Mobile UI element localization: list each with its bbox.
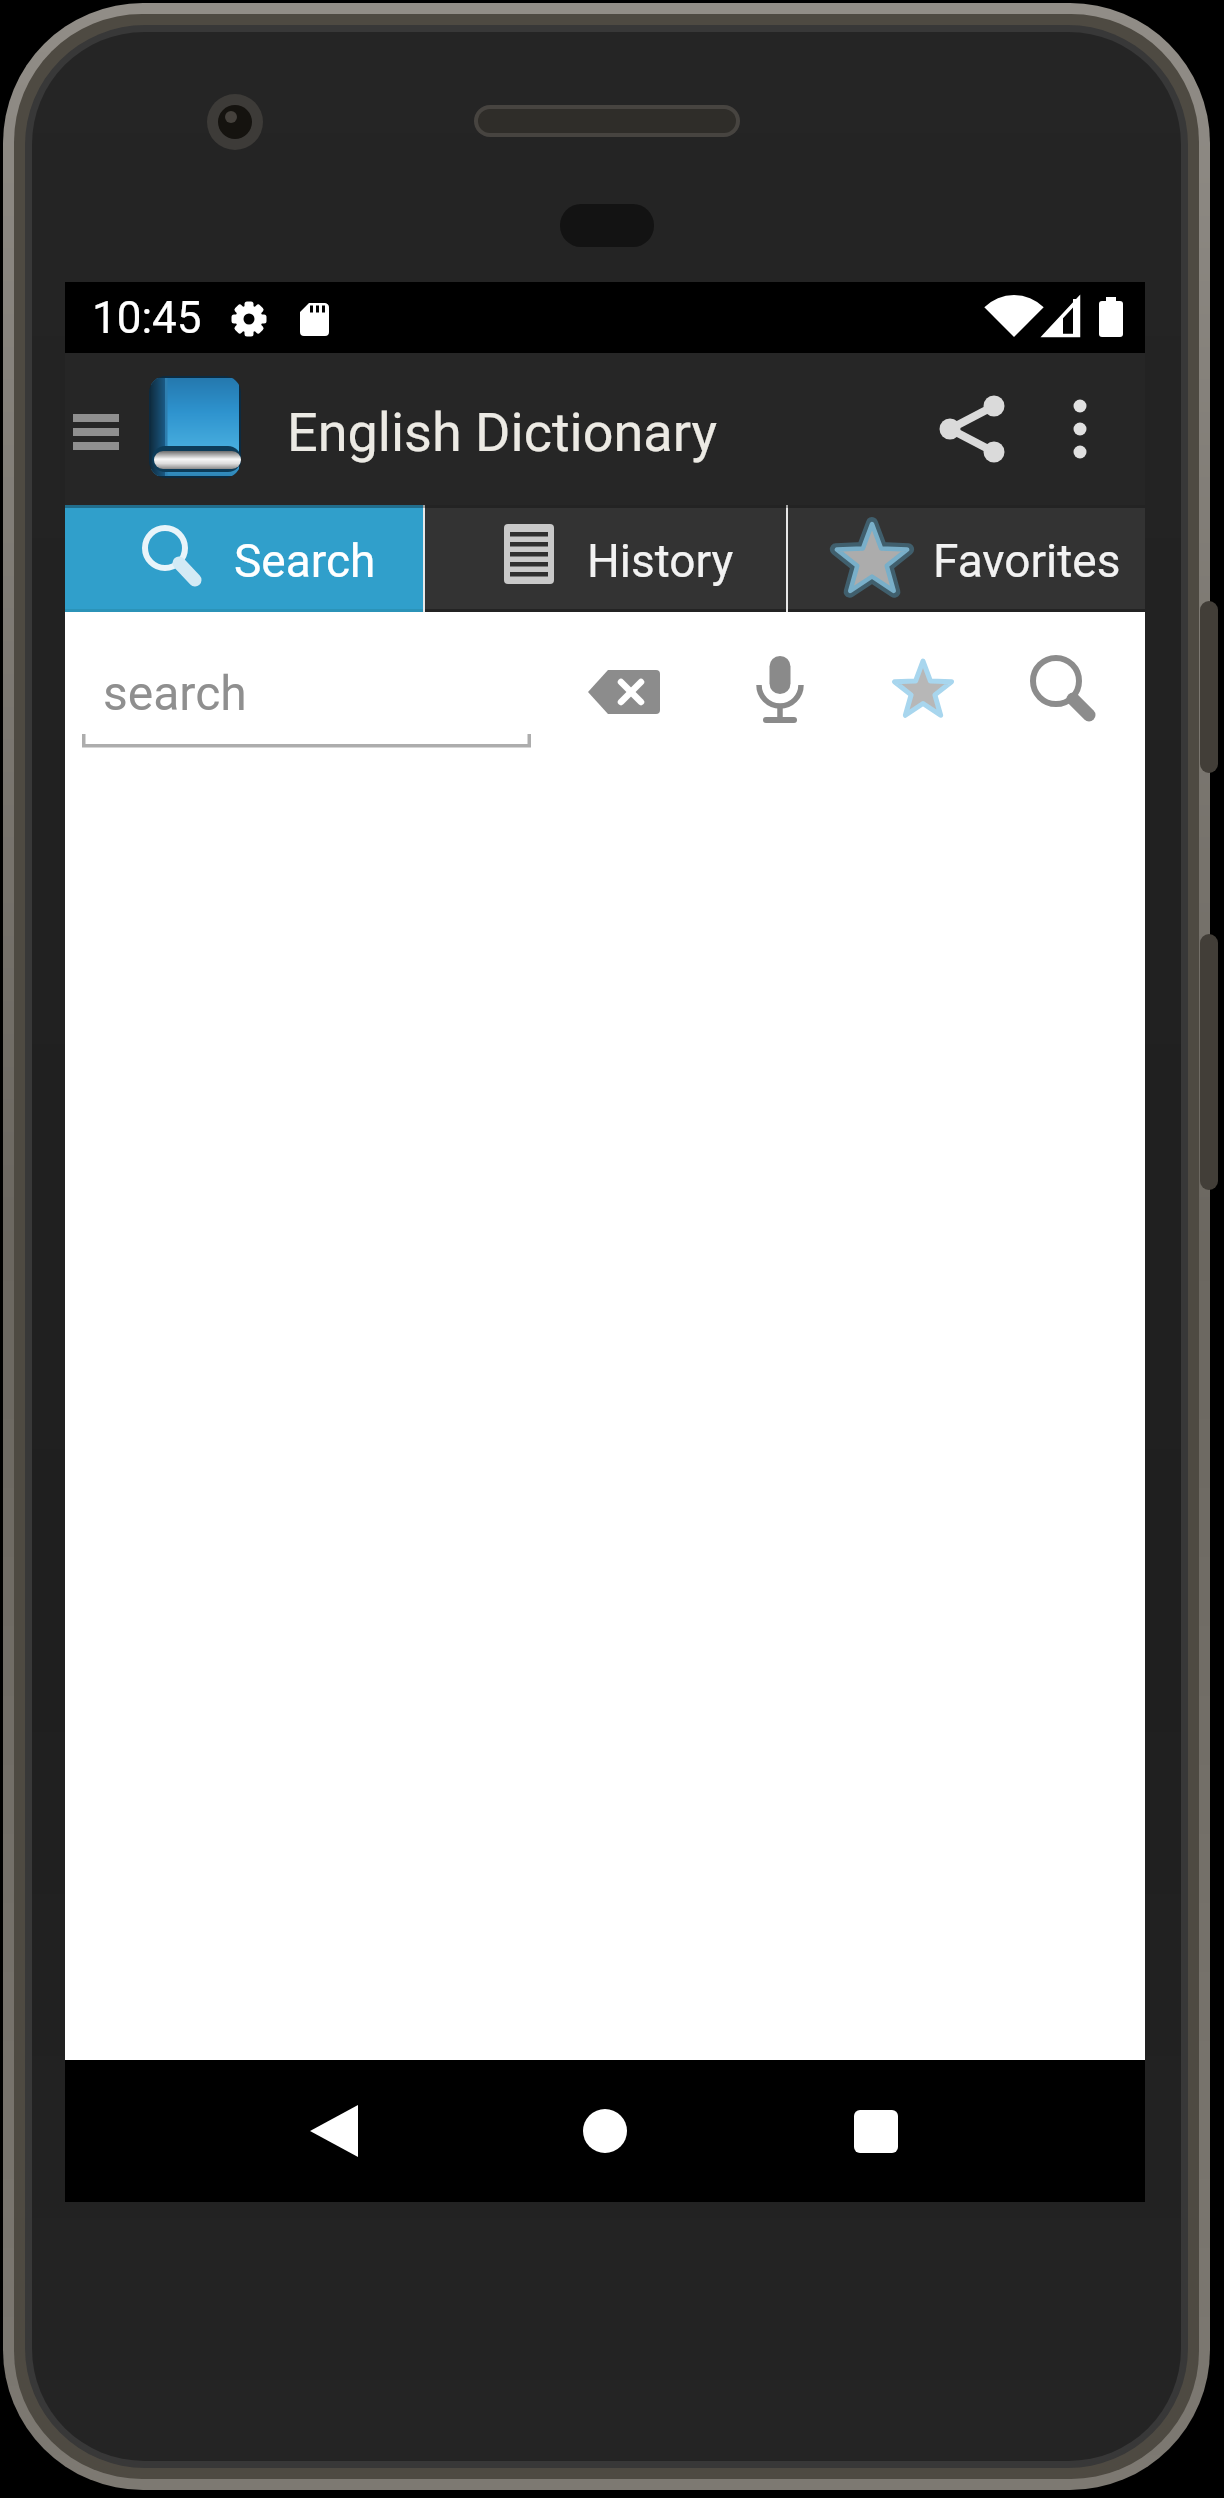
staticText: English Dictionary (287, 401, 718, 464)
button[interactable] (65, 353, 127, 505)
button[interactable]: Favorites (788, 505, 1145, 612)
button[interactable] (515, 2060, 695, 2202)
staticText: Favorites (933, 534, 1121, 588)
button[interactable]: History (425, 505, 786, 612)
button[interactable] (915, 373, 1025, 485)
button[interactable] (1040, 373, 1130, 485)
button[interactable]: Search (65, 505, 423, 612)
button[interactable] (560, 645, 688, 739)
staticText: Search (234, 534, 376, 588)
staticText: History (587, 534, 734, 588)
button[interactable] (1005, 635, 1115, 745)
button[interactable] (765, 2060, 945, 2202)
staticText: 10:45 (92, 292, 202, 344)
button[interactable] (728, 635, 832, 745)
button[interactable] (873, 640, 973, 740)
staticText: search (103, 665, 247, 721)
button[interactable] (245, 2060, 425, 2202)
